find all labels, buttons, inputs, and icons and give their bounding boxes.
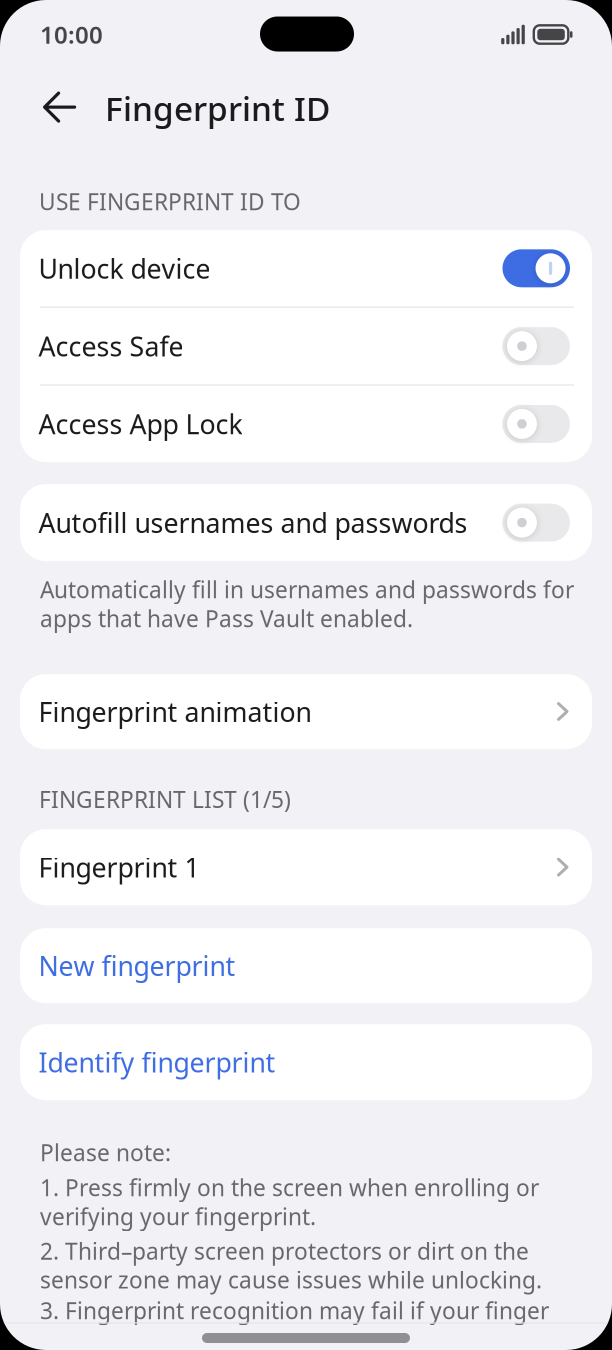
button[interactable]: New fingerprint [20,928,592,1003]
button[interactable]: Access App Lock [20,386,592,462]
staticText: 3. Fingerprint recognition may fail if y… [40,1295,549,1325]
staticText: 2. Third–party screen protectors or dirt… [40,1236,542,1295]
staticText: Unlock device [38,251,210,286]
staticText: Identify fingerprint [38,1044,275,1080]
button[interactable]: Back [0,92,77,124]
staticText: Autofill usernames and passwords [38,505,467,540]
staticText: Fingerprint ID [105,86,330,130]
button[interactable]: Fingerprint animation [20,674,592,749]
staticText: Please note: [40,1137,171,1168]
button[interactable]: Unlock device [20,230,592,306]
staticText: Automatically fill in usernames and pass… [40,574,574,633]
staticText: Access App Lock [38,406,242,442]
button[interactable]: Fingerprint 1 [20,829,592,905]
staticText: 10:00 [40,19,103,50]
staticText: USE FINGERPRINT ID TO [39,186,301,216]
staticText: FINGERPRINT LIST (1/5) [39,784,291,814]
staticText: Fingerprint animation [38,694,311,729]
staticText: Access Safe [38,328,183,364]
button[interactable]: Identify fingerprint [20,1024,592,1100]
staticText: 1. Press firmly on the screen when enrol… [40,1172,539,1231]
staticText: Fingerprint 1 [38,849,199,885]
button[interactable]: Access Safe [20,308,592,384]
staticText: New fingerprint [38,948,235,983]
button[interactable]: Autofill usernames and passwords [20,484,592,561]
